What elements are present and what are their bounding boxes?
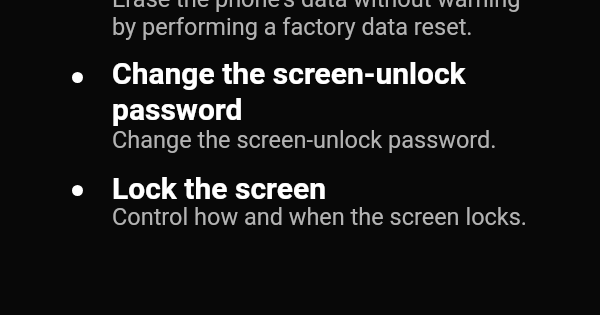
button[interactable]: Lock the screen xyxy=(60,171,560,233)
staticText: Erase the phone's data without warning b… xyxy=(112,0,521,41)
staticText: Change the screen-unlock password xyxy=(112,56,466,127)
staticText: Change the screen-unlock password. xyxy=(112,126,497,154)
staticText: Lock the screen xyxy=(112,171,326,206)
button[interactable]: Erase the phone's data without warning b… xyxy=(60,0,560,57)
staticText: Control how and when the screen locks. xyxy=(112,203,528,231)
button[interactable]: Change the screen-unlock password xyxy=(60,56,560,154)
